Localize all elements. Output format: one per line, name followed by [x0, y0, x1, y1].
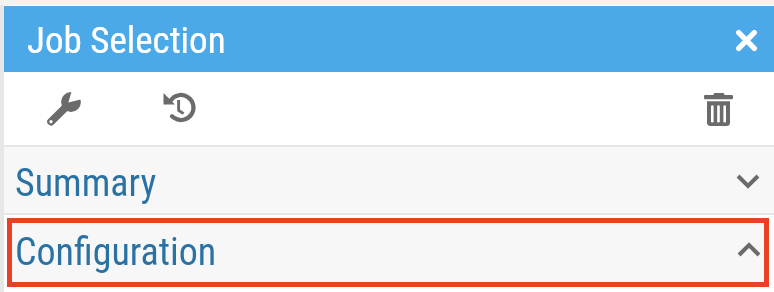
button[interactable]: Summary — [4, 147, 774, 213]
button[interactable]: Close — [726, 20, 766, 60]
button[interactable]: Settings — [39, 84, 87, 132]
button[interactable]: History — [155, 84, 203, 132]
button[interactable]: Delete — [694, 85, 742, 133]
button[interactable]: Configuration — [12, 223, 764, 282]
staticText: Summary — [15, 161, 157, 206]
staticText: Job Selection — [27, 19, 226, 62]
staticText: Configuration — [15, 230, 217, 275]
